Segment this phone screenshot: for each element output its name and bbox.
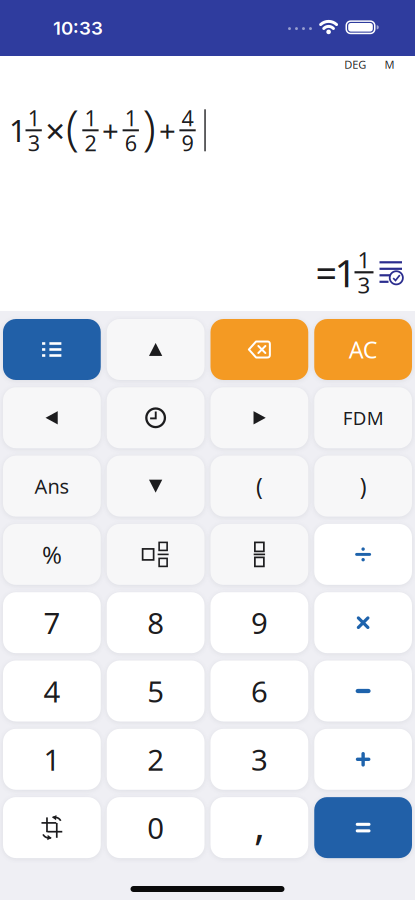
staticText: 1: [28, 103, 40, 132]
staticText: 3: [251, 739, 268, 779]
staticText: 2: [84, 128, 96, 157]
button[interactable]: [107, 319, 205, 380]
staticText: 1: [9, 110, 26, 151]
staticText: %: [42, 538, 62, 571]
button[interactable]: [3, 387, 101, 448]
staticText: 2: [147, 739, 164, 779]
button[interactable]: 0: [107, 797, 205, 858]
button[interactable]: 2: [107, 729, 205, 790]
staticText: 10:33: [53, 17, 103, 39]
button[interactable]: FDM: [314, 387, 412, 448]
staticText: DEG: [344, 57, 366, 72]
staticText: FDM: [343, 405, 384, 430]
button[interactable]: 8: [107, 592, 205, 653]
staticText: ×: [45, 107, 65, 154]
button[interactable]: 3: [210, 729, 308, 790]
button[interactable]: 5: [107, 660, 205, 721]
staticText: 1: [357, 244, 370, 275]
staticText: 1: [43, 739, 60, 779]
button[interactable]: [314, 729, 412, 790]
staticText: Ans: [34, 472, 69, 500]
staticText: 8: [147, 603, 164, 643]
button[interactable]: [210, 387, 308, 448]
staticText: 6: [125, 128, 137, 157]
button[interactable]: [107, 524, 205, 585]
staticText: 4: [182, 103, 194, 132]
button[interactable]: [314, 524, 412, 585]
button[interactable]: ,: [210, 797, 308, 858]
button[interactable]: [314, 592, 412, 653]
button[interactable]: %: [3, 524, 101, 585]
staticText: (: [256, 471, 263, 502]
staticText: 7: [43, 603, 60, 643]
staticText: 1: [125, 103, 137, 132]
staticText: 6: [251, 671, 268, 711]
button[interactable]: [210, 319, 308, 380]
button[interactable]: [107, 456, 205, 517]
staticText: +: [102, 110, 119, 150]
staticText: ): [360, 471, 367, 502]
button[interactable]: [3, 319, 101, 380]
button[interactable]: (: [210, 456, 308, 517]
button[interactable]: [107, 387, 205, 448]
staticText: =: [315, 247, 337, 298]
staticText: AC: [349, 334, 378, 365]
staticText: 3: [357, 270, 370, 300]
staticText: ,: [254, 796, 265, 852]
button[interactable]: AC: [314, 319, 412, 380]
staticText: 0: [147, 808, 164, 848]
button[interactable]: 1: [3, 729, 101, 790]
staticText: +: [159, 110, 176, 150]
staticText: ): [142, 93, 155, 158]
staticText: (: [66, 93, 79, 158]
button[interactable]: [314, 660, 412, 721]
button[interactable]: 9: [210, 592, 308, 653]
staticText: 9: [182, 128, 194, 157]
staticText: 1: [84, 103, 96, 132]
button[interactable]: [210, 524, 308, 585]
button[interactable]: 6: [210, 660, 308, 721]
staticText: 9: [251, 603, 268, 643]
button[interactable]: ): [314, 456, 412, 517]
button[interactable]: [378, 260, 403, 284]
button[interactable]: 7: [3, 592, 101, 653]
button[interactable]: Ans: [3, 456, 101, 517]
button[interactable]: 4: [3, 660, 101, 721]
staticText: M: [384, 57, 394, 72]
staticText: 5: [147, 671, 164, 711]
button[interactable]: [314, 797, 412, 858]
staticText: 3: [28, 128, 40, 157]
staticText: 1: [334, 246, 356, 299]
staticText: 4: [43, 671, 60, 711]
button[interactable]: [3, 797, 101, 858]
